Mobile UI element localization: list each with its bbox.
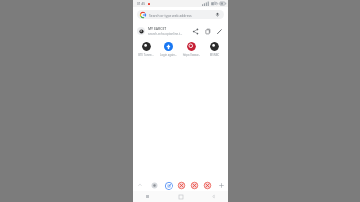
staticText: Login again... [158,53,179,57]
staticText: BTE Tunne... [136,53,156,57]
button[interactable]: Voice search [214,11,221,18]
staticText: Search or type web address [149,13,212,17]
button[interactable]: Active tab [164,181,173,190]
button[interactable]: Tab 5 [203,181,212,190]
staticText: MSNBC [204,53,225,57]
button[interactable]: Share [190,26,200,36]
button[interactable]: Search or type web address [137,10,224,19]
button[interactable]: Edit [214,26,224,36]
button[interactable]: Tab 1 [150,181,159,190]
staticText: MY EARCET [148,26,167,31]
button[interactable]: Collapse tabs [136,181,144,189]
button[interactable]: BTE Tunne... [135,39,157,59]
button[interactable]: Home [176,192,185,201]
staticText: https://www... [181,53,202,57]
button[interactable]: Tab 3 [177,181,186,190]
button[interactable]: Back [209,192,218,201]
button[interactable]: Login again... [157,39,180,59]
button[interactable]: Recents [143,192,152,201]
button[interactable]: New tab [217,181,225,189]
button[interactable]: Tab 4 [190,181,199,190]
button[interactable]: Copy [202,26,212,36]
staticText: search-echo.optonline.t... [148,32,183,36]
button[interactable]: https://www... [180,39,203,59]
button[interactable]: MY EARCET [133,22,228,39]
button[interactable]: MSNBC [203,39,226,59]
staticText: 01:45 [137,2,146,6]
